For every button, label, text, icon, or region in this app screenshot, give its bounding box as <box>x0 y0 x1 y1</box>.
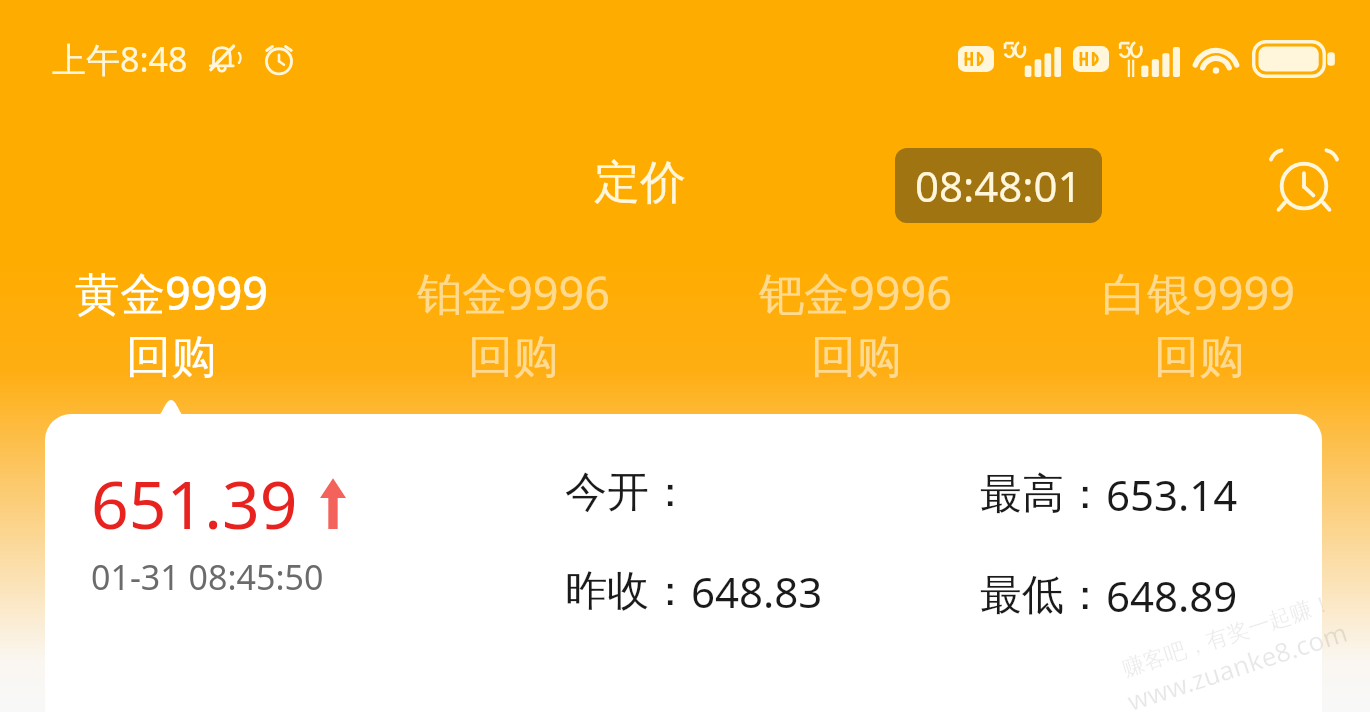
staticText: 653.14 <box>1106 466 1238 523</box>
button[interactable]: 黄金9999 <box>0 248 342 386</box>
button[interactable]: 白银9999 <box>1027 248 1370 386</box>
staticText: 上午8:48 <box>52 36 188 82</box>
button[interactable]: Alarm <box>1266 145 1342 221</box>
staticText: 01-31 08:45:50 <box>91 554 324 600</box>
staticText: 赚客吧，有奖一起赚！ <box>1119 588 1336 683</box>
staticText: www.zuanke8.com <box>1122 614 1352 712</box>
staticText: 黄金9999 <box>75 262 268 323</box>
staticText: 铂金9996 <box>417 262 610 323</box>
staticText: 回购 <box>126 329 216 386</box>
staticText: 648.89 <box>1106 567 1238 624</box>
staticText: 最低： <box>980 569 1106 622</box>
button[interactable]: 08:48:01 <box>895 148 1102 223</box>
staticText: 648.83 <box>691 563 823 620</box>
button[interactable]: 铂金9996 <box>342 248 684 386</box>
staticText: 最高： <box>980 468 1106 521</box>
staticText: 定价 <box>594 154 686 212</box>
button[interactable]: 钯金9996 <box>684 248 1027 386</box>
staticText: 今开： <box>565 466 691 519</box>
staticText: 回购 <box>468 329 558 386</box>
staticText: 回购 <box>811 329 901 386</box>
staticText: 钯金9996 <box>759 262 952 323</box>
staticText: 白银9999 <box>1102 262 1295 323</box>
staticText: 08:48:01 <box>915 157 1082 214</box>
staticText: 昨收： <box>565 565 691 618</box>
staticText: 651.39 <box>91 458 298 548</box>
staticText: 回购 <box>1154 329 1244 386</box>
